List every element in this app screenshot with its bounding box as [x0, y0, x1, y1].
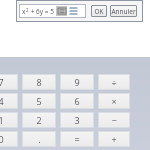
staticText: − — [111, 114, 117, 126]
staticText: ÷ — [111, 76, 117, 88]
staticText: Annuler — [111, 7, 136, 16]
staticText: OK — [94, 7, 104, 16]
button[interactable]: Menu — [69, 6, 78, 16]
staticText: 0 — [0, 133, 4, 145]
button[interactable]: 6 — [60, 93, 94, 109]
button[interactable]: x — [19, 4, 86, 18]
button[interactable]: . — [22, 131, 56, 147]
button[interactable]: 3 — [60, 112, 94, 128]
staticText: 2 — [26, 7, 29, 13]
staticText: + 6y = 5 — [29, 7, 54, 16]
button[interactable]: 8 — [22, 74, 56, 90]
staticText: 6 — [74, 95, 80, 107]
staticText: x — [22, 7, 26, 16]
staticText: 4 — [0, 95, 4, 107]
staticText: + — [111, 133, 117, 145]
staticText: = — [74, 133, 80, 145]
button[interactable]: 7 — [0, 74, 18, 90]
staticText: 3 — [74, 114, 80, 126]
staticText: 2 — [36, 114, 42, 126]
staticText: 7 — [0, 76, 4, 88]
staticText: 9 — [74, 76, 80, 88]
staticText: × — [111, 95, 117, 107]
staticText: . — [38, 133, 41, 145]
staticText: 1 — [0, 114, 4, 126]
button[interactable]: − — [98, 112, 130, 128]
button[interactable]: 9 — [60, 74, 94, 90]
button[interactable]: 0 — [0, 131, 18, 147]
button[interactable]: 2 — [22, 112, 56, 128]
staticText: 5 — [36, 95, 42, 107]
button[interactable]: 1 — [0, 112, 18, 128]
button[interactable]: Keyboard — [56, 6, 67, 16]
staticText: 8 — [36, 76, 42, 88]
button[interactable]: 4 — [0, 93, 18, 109]
button[interactable]: ÷ — [98, 74, 130, 90]
button[interactable]: Annuler — [110, 5, 137, 17]
button[interactable]: × — [98, 93, 130, 109]
button[interactable]: + — [98, 131, 130, 147]
button[interactable]: OK — [91, 5, 107, 17]
button[interactable]: 5 — [22, 93, 56, 109]
button[interactable]: = — [60, 131, 94, 147]
